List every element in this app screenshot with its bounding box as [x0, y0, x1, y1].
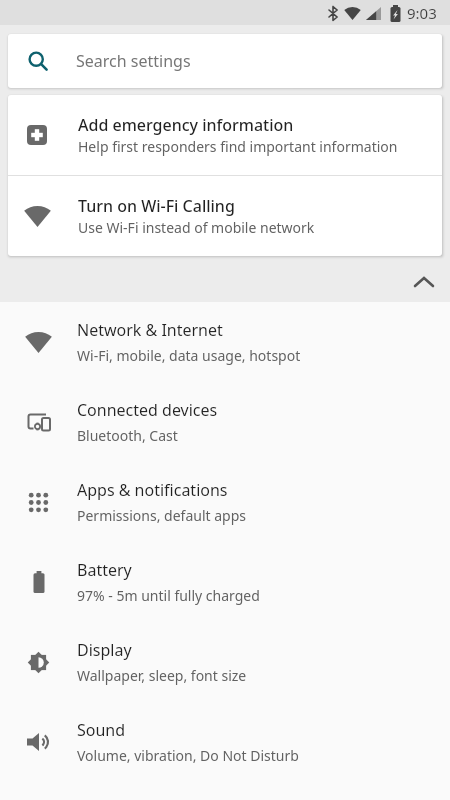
button[interactable]: Sound [0, 702, 450, 782]
staticText: Wallpaper, sleep, font size [77, 666, 247, 685]
staticText: 97% - 5m until fully charged [77, 586, 260, 605]
staticText: Add emergency information [78, 114, 294, 136]
staticText: Network & Internet [77, 319, 223, 341]
button[interactable]: Connected devices [0, 382, 450, 462]
button[interactable]: Search settings [8, 34, 442, 88]
button[interactable]: Apps & notifications [0, 462, 450, 542]
staticText: Volume, vibration, Do Not Disturb [77, 746, 299, 765]
staticText: Battery [77, 559, 132, 581]
staticText: Apps & notifications [77, 479, 228, 501]
staticText: Use Wi-Fi instead of mobile network [78, 218, 315, 237]
button[interactable]: Network & Internet [0, 302, 450, 382]
staticText: Permissions, default apps [77, 506, 247, 525]
button[interactable]: Add emergency information [8, 95, 442, 175]
staticText: Display [77, 639, 132, 661]
button[interactable]: Turn on Wi-Fi Calling [8, 176, 442, 256]
button[interactable] [406, 264, 442, 300]
button[interactable]: Battery [0, 542, 450, 622]
button[interactable]: Display [0, 622, 450, 702]
staticText: 9:03 [407, 3, 437, 23]
staticText: Sound [77, 719, 126, 741]
staticText: Search settings [76, 50, 191, 72]
staticText: Wi-Fi, mobile, data usage, hotspot [77, 346, 301, 365]
staticText: Help first responders find important inf… [78, 137, 398, 156]
staticText: Connected devices [77, 399, 218, 421]
staticText: Turn on Wi-Fi Calling [78, 195, 235, 217]
staticText: Bluetooth, Cast [77, 426, 178, 445]
